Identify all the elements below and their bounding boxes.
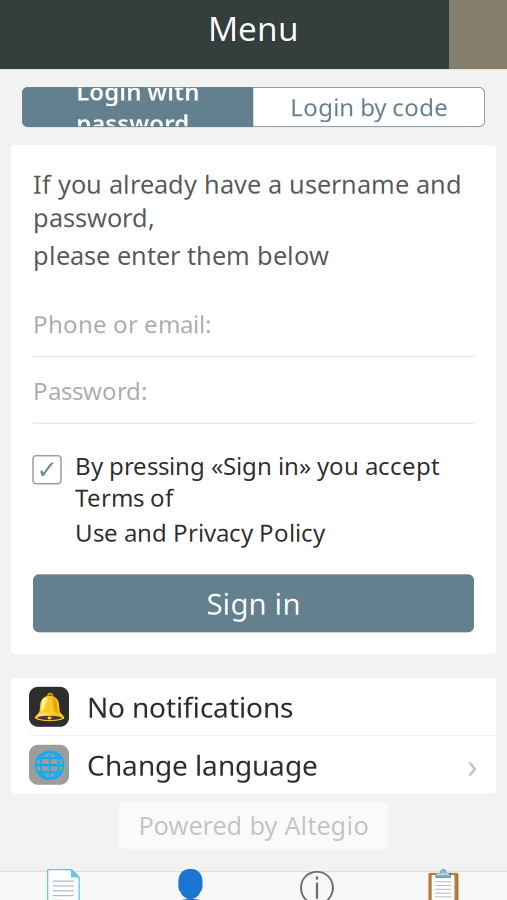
staticText: 🌐 <box>32 750 65 780</box>
staticText: Phone or email: <box>33 308 211 340</box>
button[interactable]: ✓ <box>33 450 474 548</box>
staticText: 📋 <box>421 868 466 900</box>
staticText: Menu <box>208 6 299 50</box>
staticText: Powered by Altegio <box>138 808 368 842</box>
staticText: By pressing «Sign in» you accept Terms o… <box>75 450 440 513</box>
staticText: Login by code <box>290 91 448 123</box>
button[interactable]: ⓘ <box>253 872 380 900</box>
staticText: Use and Privacy Policy <box>75 516 325 548</box>
staticText: ⓘ <box>299 867 335 900</box>
staticText: please enter them below <box>33 238 329 272</box>
button[interactable]: 👤 <box>127 872 254 900</box>
button[interactable]: Login with password <box>22 87 253 127</box>
button[interactable]: 🔔 <box>11 678 496 735</box>
staticText: Password: <box>33 375 147 407</box>
staticText: No notifications <box>87 688 293 725</box>
staticText: Change language <box>87 746 318 783</box>
staticText: 📄 <box>41 868 86 900</box>
staticText: Sign in <box>206 584 300 623</box>
button[interactable]: 📋 <box>380 872 507 900</box>
button[interactable]: Sign in <box>33 574 474 632</box>
staticText: 👤 <box>168 868 213 900</box>
staticText: ✓ <box>36 455 57 484</box>
button[interactable]: Login by code <box>253 87 485 127</box>
staticText: Login with password <box>76 75 199 139</box>
button[interactable]: 🌐 <box>11 736 496 793</box>
staticText: › <box>467 742 478 788</box>
staticText: If you already have a username and passw… <box>33 167 462 234</box>
button[interactable]: 📄 <box>0 872 127 900</box>
staticText: 🔔 <box>32 692 65 722</box>
